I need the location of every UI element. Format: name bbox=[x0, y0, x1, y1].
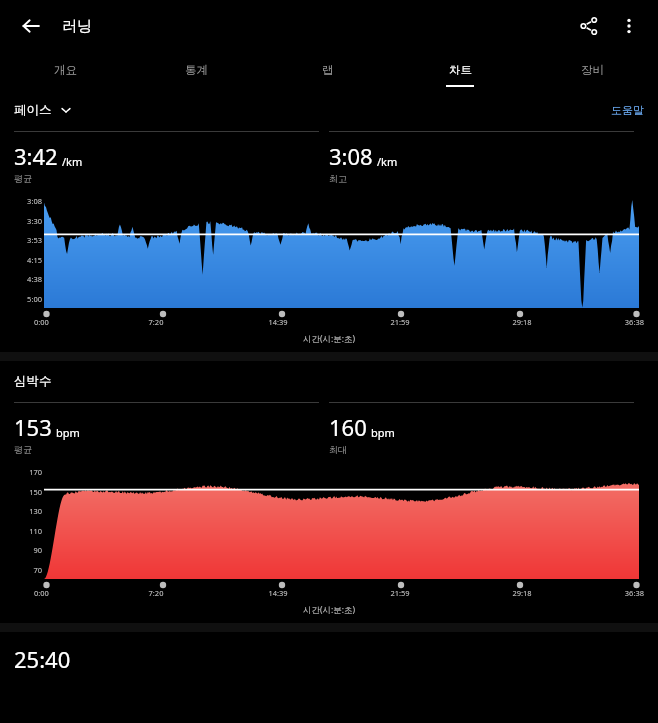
staticText: /km bbox=[62, 154, 83, 169]
staticText: 최대 bbox=[329, 444, 347, 455]
staticText: 3:53 bbox=[14, 235, 42, 245]
button[interactable]: 통계 bbox=[131, 52, 262, 95]
staticText: 시간(시:분:초) bbox=[14, 333, 644, 345]
staticText: 21:59 bbox=[339, 588, 461, 598]
staticText: 110 bbox=[14, 526, 42, 536]
staticText: 170 bbox=[14, 467, 42, 477]
staticText: 25:40 bbox=[14, 644, 71, 674]
staticText: 150 bbox=[14, 487, 42, 497]
staticText: 70 bbox=[14, 565, 42, 575]
staticText: 개요 bbox=[54, 63, 77, 77]
staticText: 7:20 bbox=[95, 588, 217, 598]
staticText: 통계 bbox=[185, 63, 208, 77]
staticText: 36:38 bbox=[583, 588, 644, 598]
staticText: 29:18 bbox=[461, 588, 583, 598]
staticText: 3:08 bbox=[14, 196, 42, 206]
button[interactable]: 도움말 bbox=[611, 103, 644, 117]
button[interactable]: 페이스 bbox=[14, 102, 73, 118]
staticText: bpm bbox=[56, 425, 80, 440]
staticText: 14:39 bbox=[217, 588, 339, 598]
staticText: 160 bbox=[329, 412, 367, 442]
staticText: 러닝 bbox=[62, 17, 92, 36]
staticText: 36:38 bbox=[583, 317, 644, 327]
staticText: 153 bbox=[14, 412, 52, 442]
staticText: 21:59 bbox=[339, 317, 461, 327]
staticText: 3:42 bbox=[14, 141, 58, 171]
staticText: 29:18 bbox=[461, 317, 583, 327]
staticText: 3:30 bbox=[14, 216, 42, 226]
button[interactable]: Share bbox=[572, 9, 606, 43]
staticText: 도움말 bbox=[611, 103, 644, 117]
staticText: 평균 bbox=[14, 173, 32, 184]
staticText: 시간(시:분:초) bbox=[14, 604, 644, 616]
staticText: 7:20 bbox=[95, 317, 217, 327]
staticText: 장비 bbox=[581, 63, 604, 77]
staticText: 0:00 bbox=[34, 317, 95, 327]
staticText: 14:39 bbox=[217, 317, 339, 327]
staticText: /km bbox=[377, 154, 398, 169]
button[interactable]: 장비 bbox=[526, 52, 658, 95]
staticText: 랩 bbox=[322, 63, 334, 77]
staticText: 130 bbox=[14, 506, 42, 516]
staticText: 90 bbox=[14, 545, 42, 555]
staticText: 5:00 bbox=[14, 294, 42, 304]
staticText: 0:00 bbox=[34, 588, 95, 598]
staticText: 3:08 bbox=[329, 141, 373, 171]
staticText: 평균 bbox=[14, 444, 32, 455]
button[interactable]: More options bbox=[614, 11, 644, 41]
button[interactable]: 차트 bbox=[394, 52, 526, 95]
button[interactable]: 개요 bbox=[0, 52, 131, 95]
staticText: 최고 bbox=[329, 173, 347, 184]
staticText: bpm bbox=[371, 425, 395, 440]
button[interactable]: 랩 bbox=[262, 52, 394, 95]
staticText: 차트 bbox=[449, 63, 472, 77]
button[interactable]: Back bbox=[14, 9, 48, 43]
staticText: 페이스 bbox=[14, 102, 52, 118]
staticText: 심박수 bbox=[14, 373, 52, 389]
staticText: 4:15 bbox=[14, 255, 42, 265]
staticText: 4:38 bbox=[14, 274, 42, 284]
